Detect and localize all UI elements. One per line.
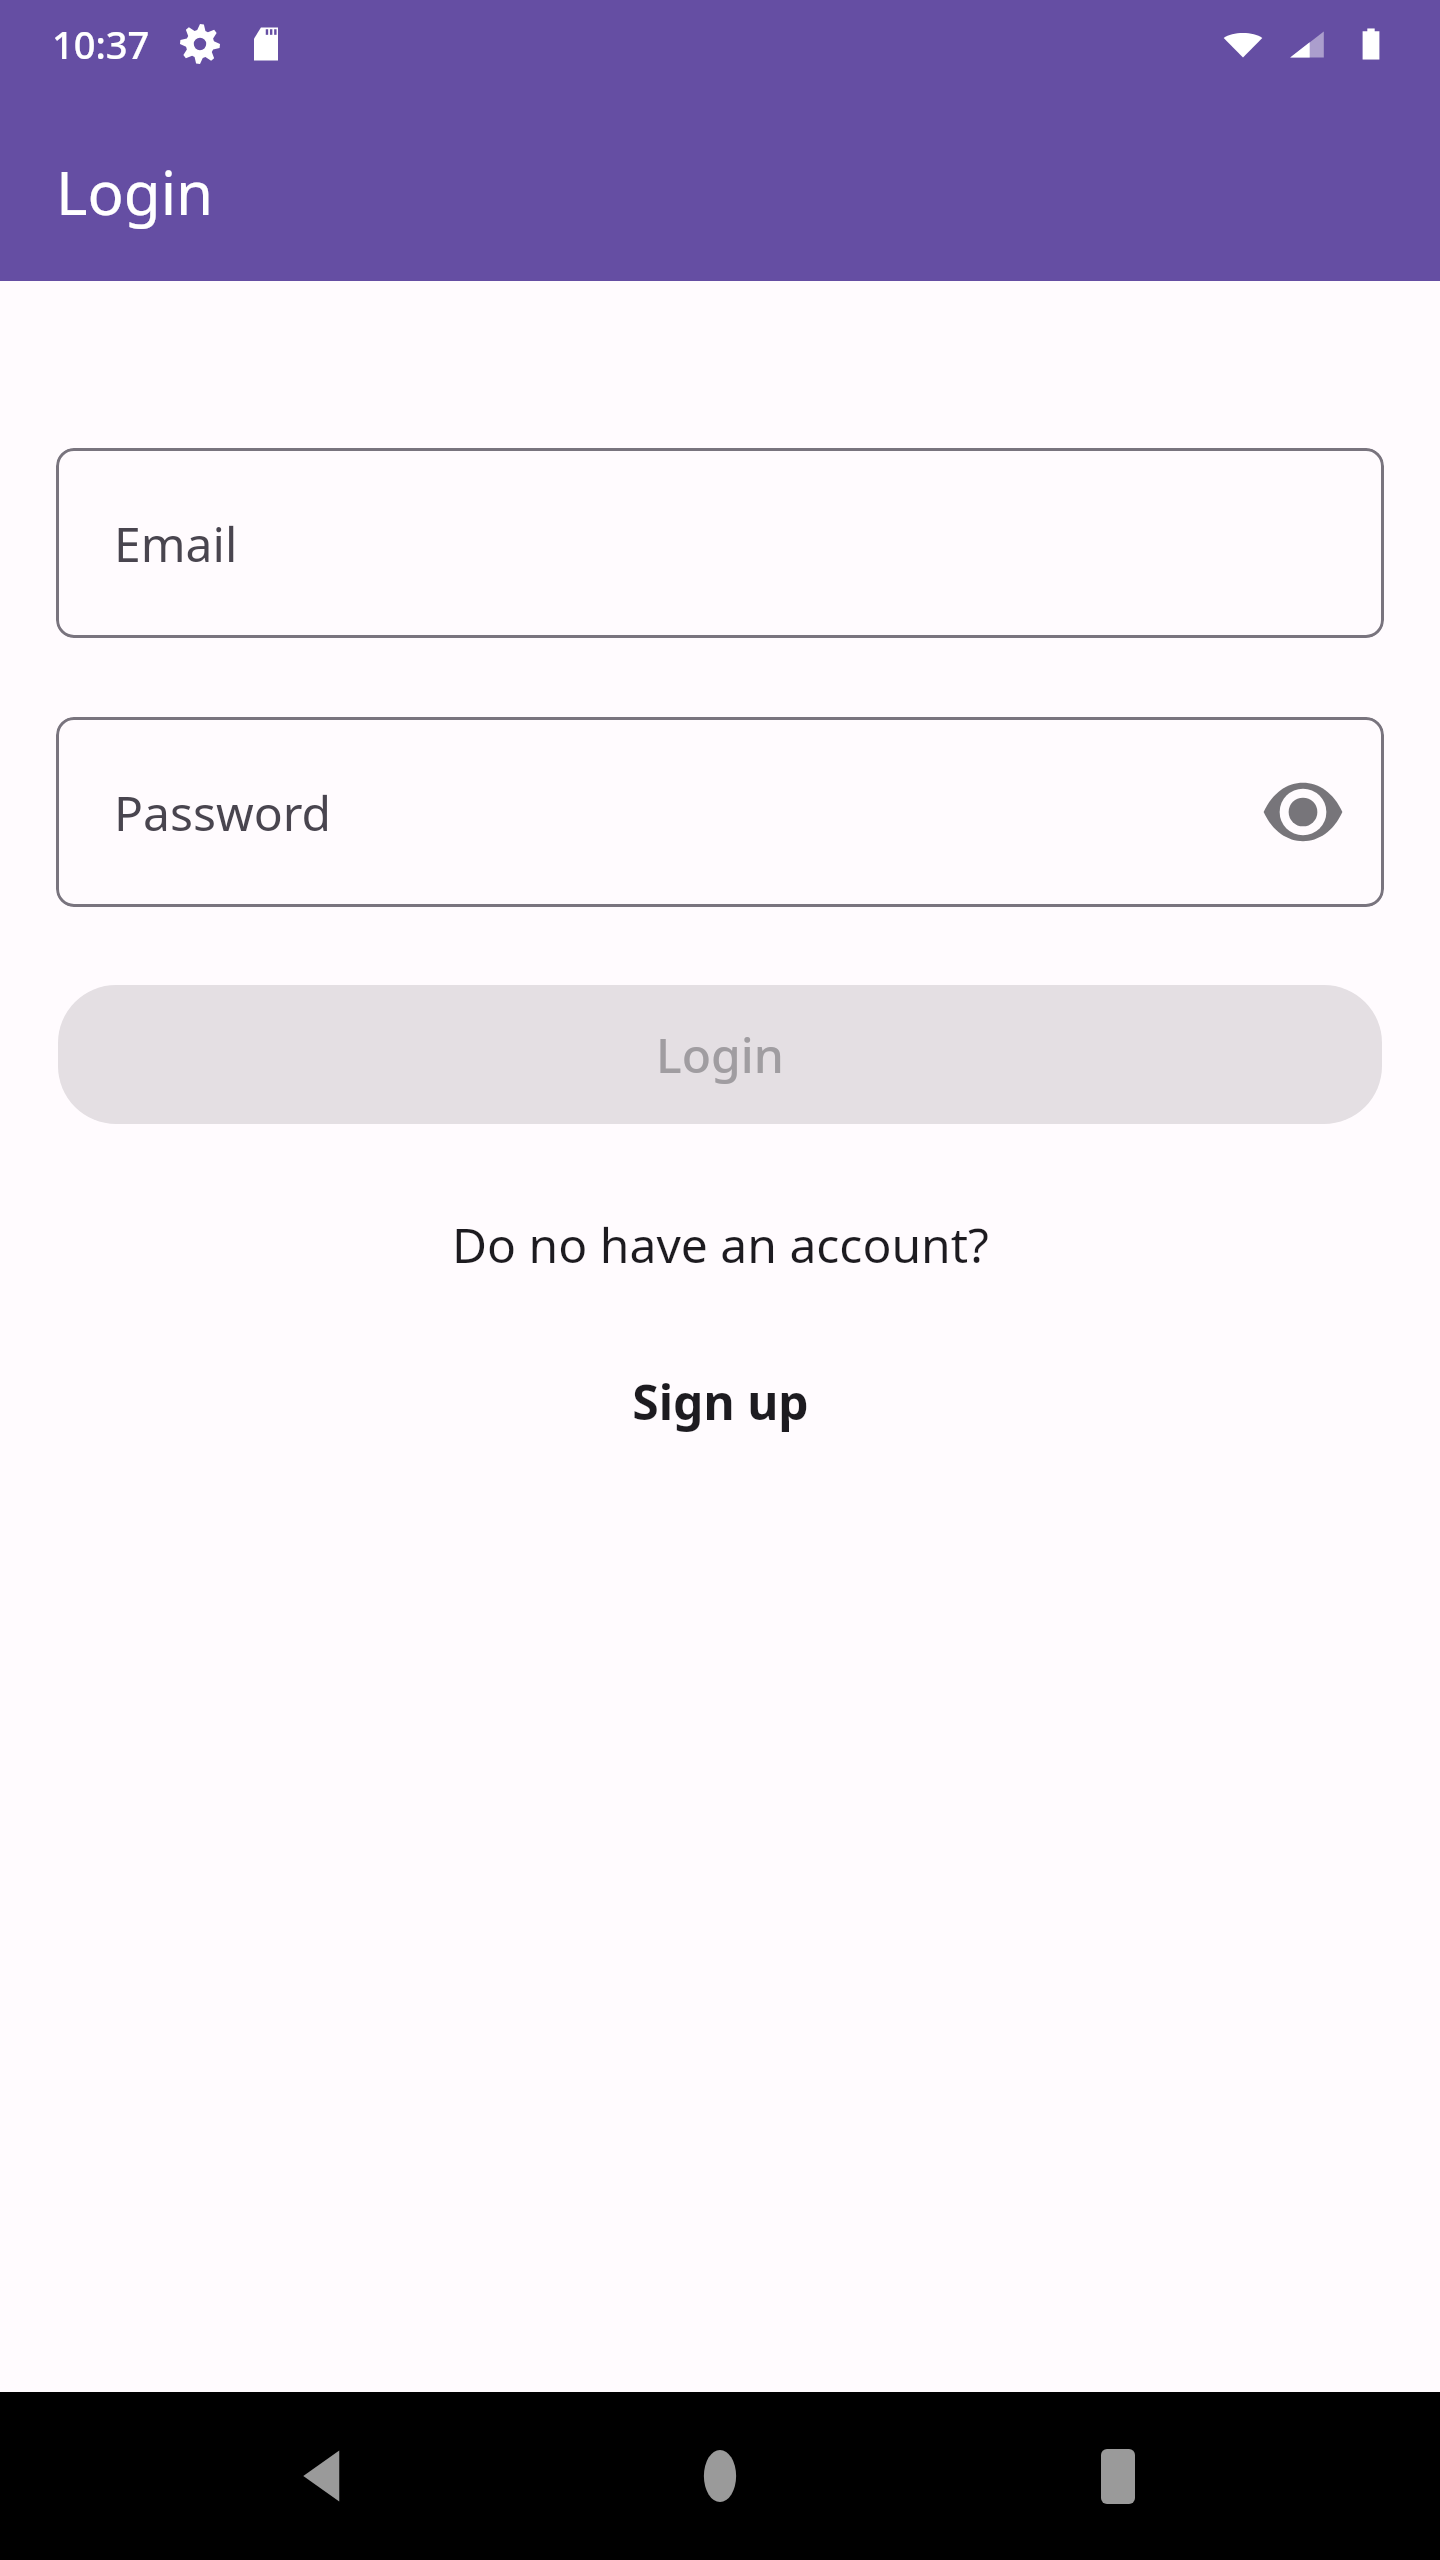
button[interactable]: Recent apps — [1043, 2401, 1193, 2551]
button[interactable]: Login — [58, 985, 1382, 1124]
button[interactable]: Sign up — [0, 1369, 1440, 1434]
button[interactable]: Back — [248, 2401, 398, 2551]
staticText: Sign up — [632, 1369, 809, 1434]
staticText: Email — [114, 511, 238, 576]
button[interactable]: Show password — [1248, 757, 1358, 867]
button[interactable]: Password — [56, 717, 1384, 907]
staticText: Do no have an account? — [452, 1212, 989, 1277]
button[interactable]: Do no have an account? — [0, 1212, 1440, 1277]
staticText: Login — [56, 151, 214, 233]
staticText: Login — [656, 1022, 784, 1087]
button[interactable]: Home — [645, 2401, 795, 2551]
button[interactable]: Email — [56, 448, 1384, 638]
staticText: Password — [114, 780, 332, 845]
staticText: 10:37 — [52, 18, 150, 70]
